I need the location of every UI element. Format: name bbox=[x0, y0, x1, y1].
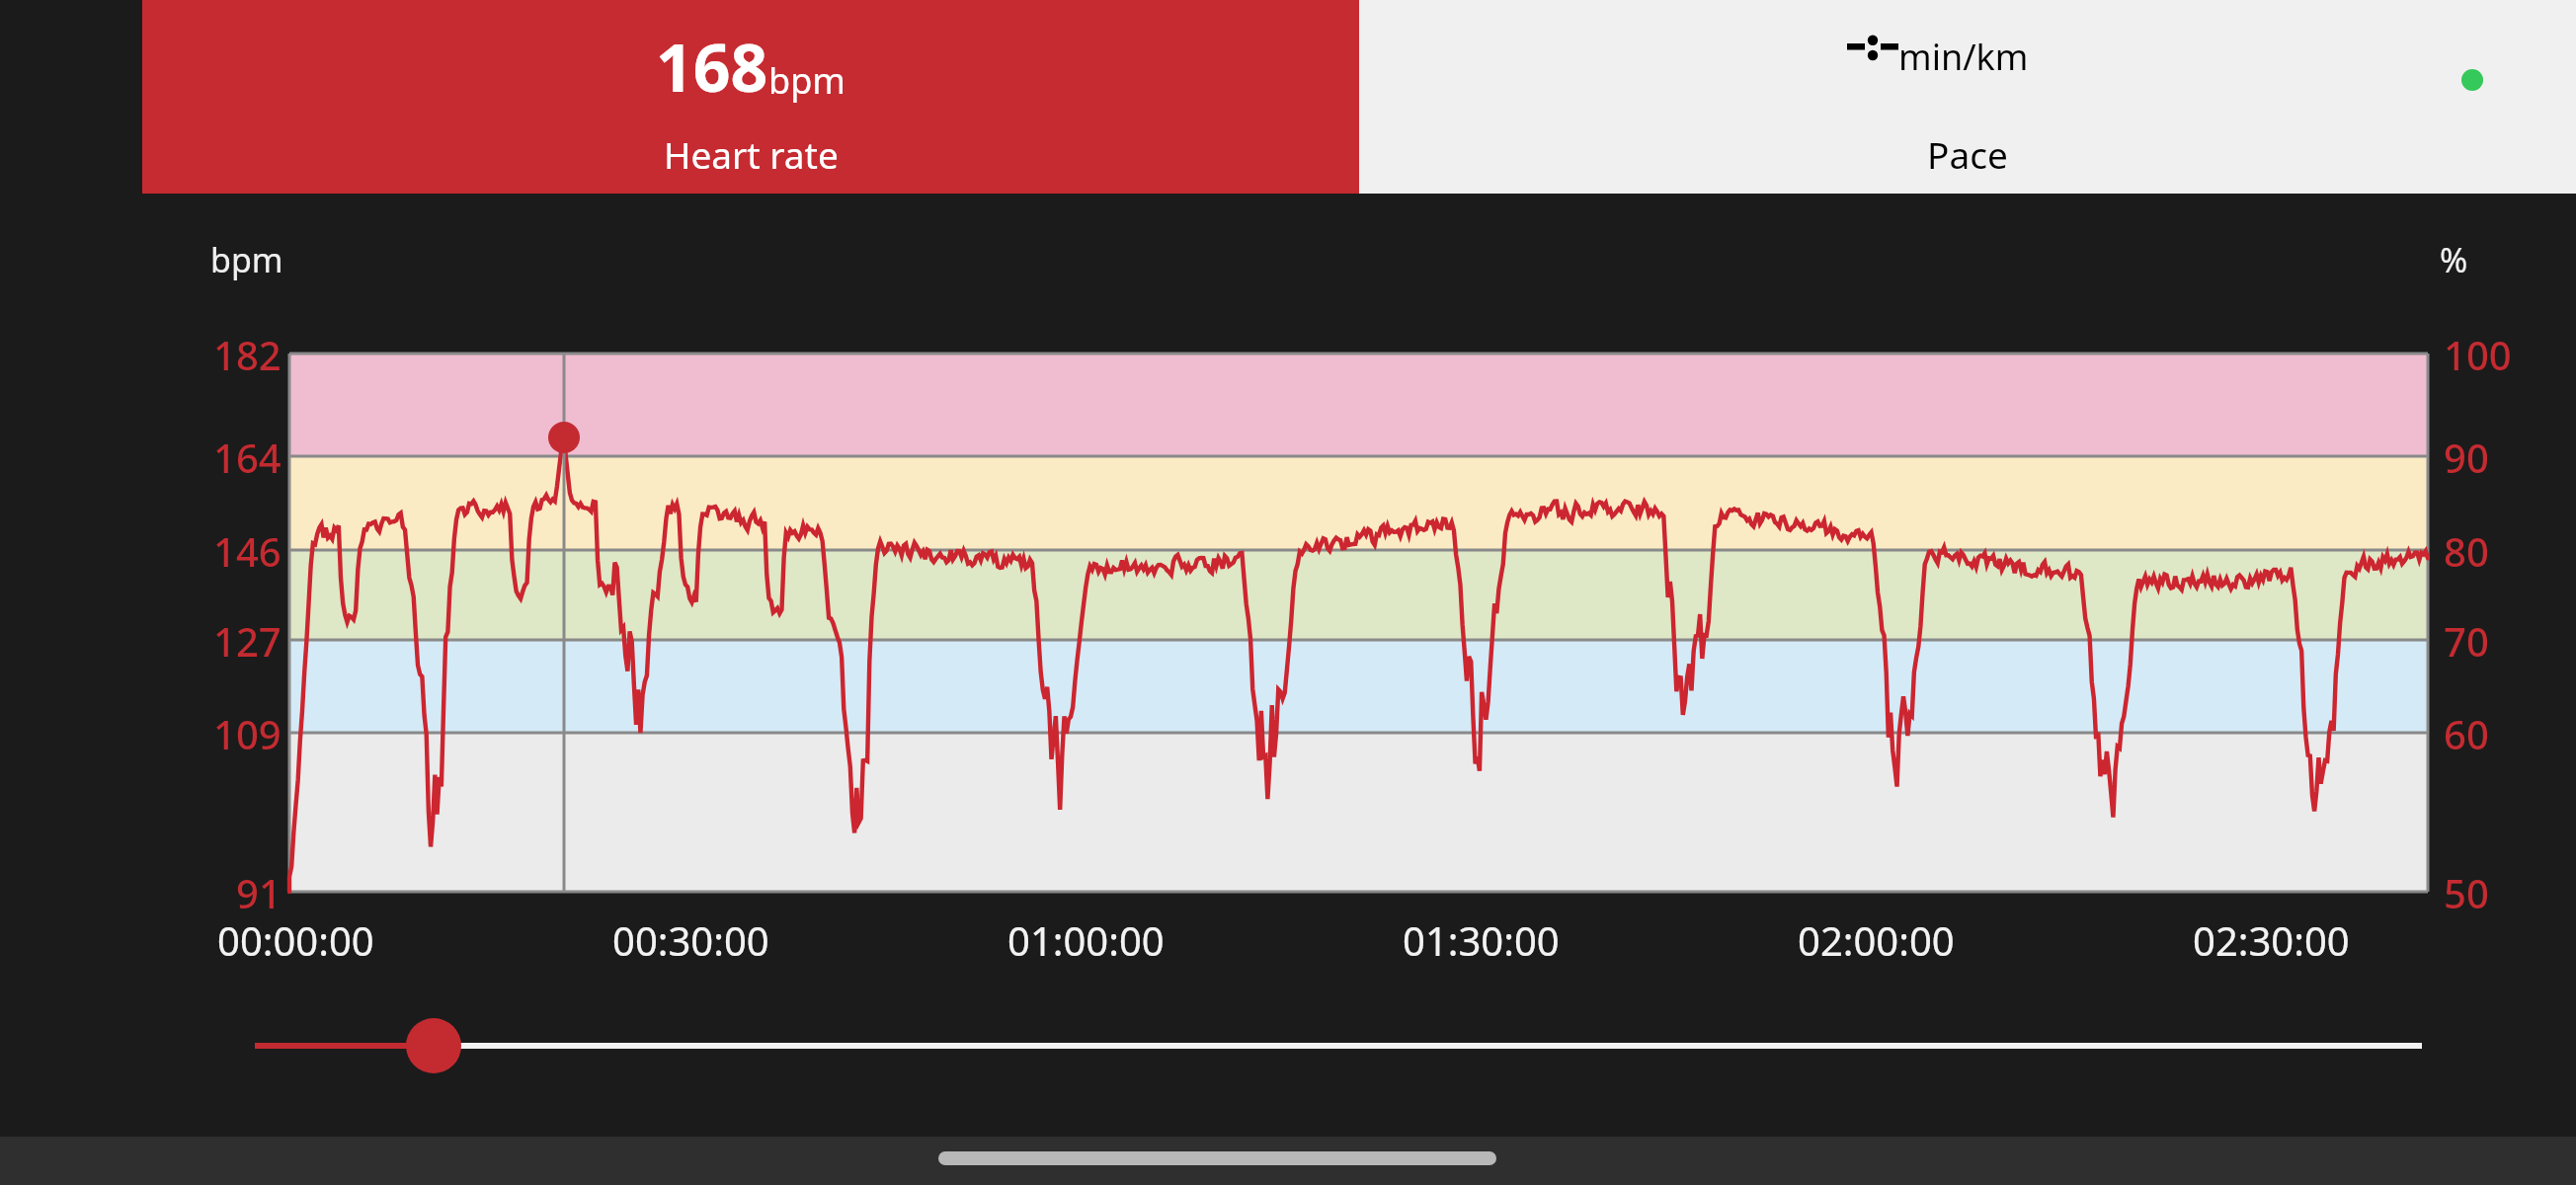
staticText: 60 bbox=[2444, 707, 2489, 758]
button[interactable]: Home bbox=[938, 1151, 1496, 1165]
button[interactable]: 168 bbox=[142, 0, 1359, 194]
staticText: 90 bbox=[2444, 431, 2489, 482]
button[interactable]: min/km bbox=[1359, 0, 2576, 194]
staticText: min/km bbox=[1898, 33, 2029, 81]
staticText: 50 bbox=[2444, 866, 2489, 917]
staticText: Pace bbox=[1927, 129, 2008, 179]
staticText: 100 bbox=[2444, 328, 2512, 379]
staticText: 168 bbox=[656, 22, 768, 111]
staticText: 127 bbox=[213, 614, 282, 666]
staticText: 164 bbox=[213, 431, 282, 482]
staticText: 01:30:00 bbox=[1403, 913, 1560, 965]
staticText: 00:00:00 bbox=[217, 913, 374, 965]
staticText: 80 bbox=[2444, 524, 2489, 576]
staticText: bpm bbox=[210, 237, 283, 282]
staticText: 91 bbox=[236, 866, 282, 917]
staticText: 109 bbox=[213, 707, 282, 758]
staticText: 70 bbox=[2444, 614, 2489, 666]
staticText: 02:30:00 bbox=[2193, 913, 2350, 965]
staticText: 01:00:00 bbox=[1007, 913, 1165, 965]
staticText: 146 bbox=[213, 524, 282, 576]
staticText: 182 bbox=[213, 328, 282, 379]
staticText: 02:00:00 bbox=[1798, 913, 1955, 965]
staticText: bpm bbox=[768, 56, 845, 105]
staticText: 00:30:00 bbox=[612, 913, 769, 965]
staticText: % bbox=[2440, 237, 2468, 282]
button[interactable]: Seek position in workout bbox=[227, 1006, 2450, 1085]
staticText: Heart rate bbox=[664, 129, 839, 179]
